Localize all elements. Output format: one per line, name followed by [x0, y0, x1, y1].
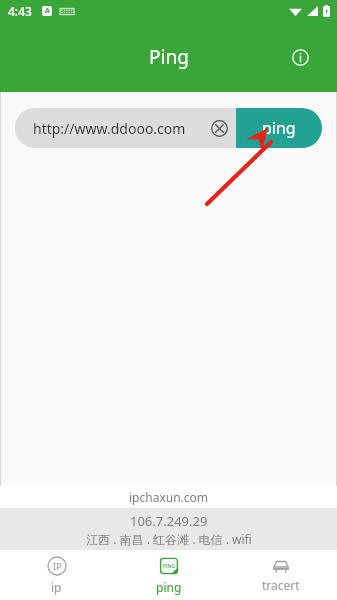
- button[interactable]: Clear: [206, 115, 232, 141]
- button[interactable]: Info: [283, 40, 317, 74]
- button[interactable]: tracert: [225, 550, 337, 600]
- staticText: PING: [163, 563, 176, 570]
- staticText: IP: [53, 560, 62, 572]
- staticText: ping: [262, 117, 296, 139]
- button[interactable]: PING: [113, 550, 225, 600]
- staticText: 4:43: [8, 3, 32, 19]
- staticText: tracert: [262, 577, 300, 593]
- staticText: ping: [156, 579, 182, 595]
- button[interactable]: http://www.ddooo.com: [15, 108, 236, 148]
- staticText: http://www.ddooo.com: [33, 119, 186, 138]
- staticText: ip: [51, 579, 62, 595]
- staticText: Ping: [149, 44, 189, 70]
- staticText: 106.7.249.29: [130, 512, 208, 530]
- staticText: A: [45, 6, 50, 16]
- button[interactable]: IP: [0, 550, 113, 600]
- staticText: 江西 . 南昌 . 红谷滩 . 电信 . wifi: [86, 531, 252, 547]
- staticText: ipchaxun.com: [129, 489, 209, 505]
- button[interactable]: ping: [236, 108, 322, 148]
